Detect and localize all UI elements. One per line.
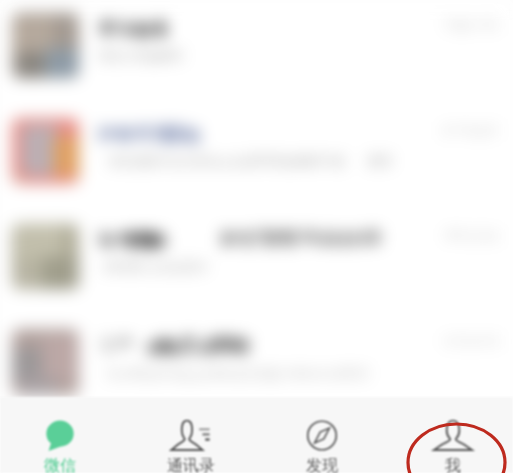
button[interactable]: Discover [256, 397, 387, 473]
staticText: 通讯录 [167, 456, 215, 473]
staticText: 微信 [44, 456, 76, 473]
staticText: 我 [445, 456, 461, 473]
button[interactable]: WeChat [0, 397, 125, 473]
staticText: 发现 [306, 456, 338, 473]
button[interactable]: Contacts [125, 397, 256, 473]
button[interactable]: Me [387, 397, 513, 473]
